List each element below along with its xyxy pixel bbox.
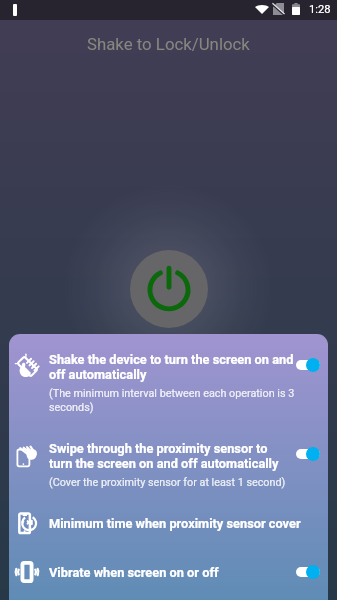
staticText: Shake the device to turn the screen on a…	[49, 352, 294, 382]
button[interactable]: Power	[130, 250, 208, 328]
button[interactable]: Toggle	[296, 562, 328, 582]
button[interactable]: Shake the device to turn the screen on a…	[9, 334, 328, 416]
staticText: Swipe through the proximity sensor to tu…	[49, 441, 279, 471]
staticText: 1:28	[309, 3, 331, 16]
staticText: Minimum time when proximity sensor cover	[49, 516, 301, 531]
button[interactable]: Toggle	[296, 444, 328, 464]
button[interactable]: Swipe through the proximity sensor to tu…	[9, 416, 328, 491]
staticText: Vibrate when screen on or off	[49, 565, 219, 580]
staticText: (Cover the proximity sensor for at least…	[49, 476, 286, 489]
button[interactable]: Vibrate when screen on or off	[9, 535, 328, 584]
button[interactable]: Minimum time when proximity sensor cover	[9, 491, 328, 535]
staticText: (The minimum interval between each opera…	[49, 387, 295, 414]
button[interactable]: Toggle	[296, 355, 328, 375]
staticText: Shake to Lock/Unlock	[87, 34, 250, 54]
